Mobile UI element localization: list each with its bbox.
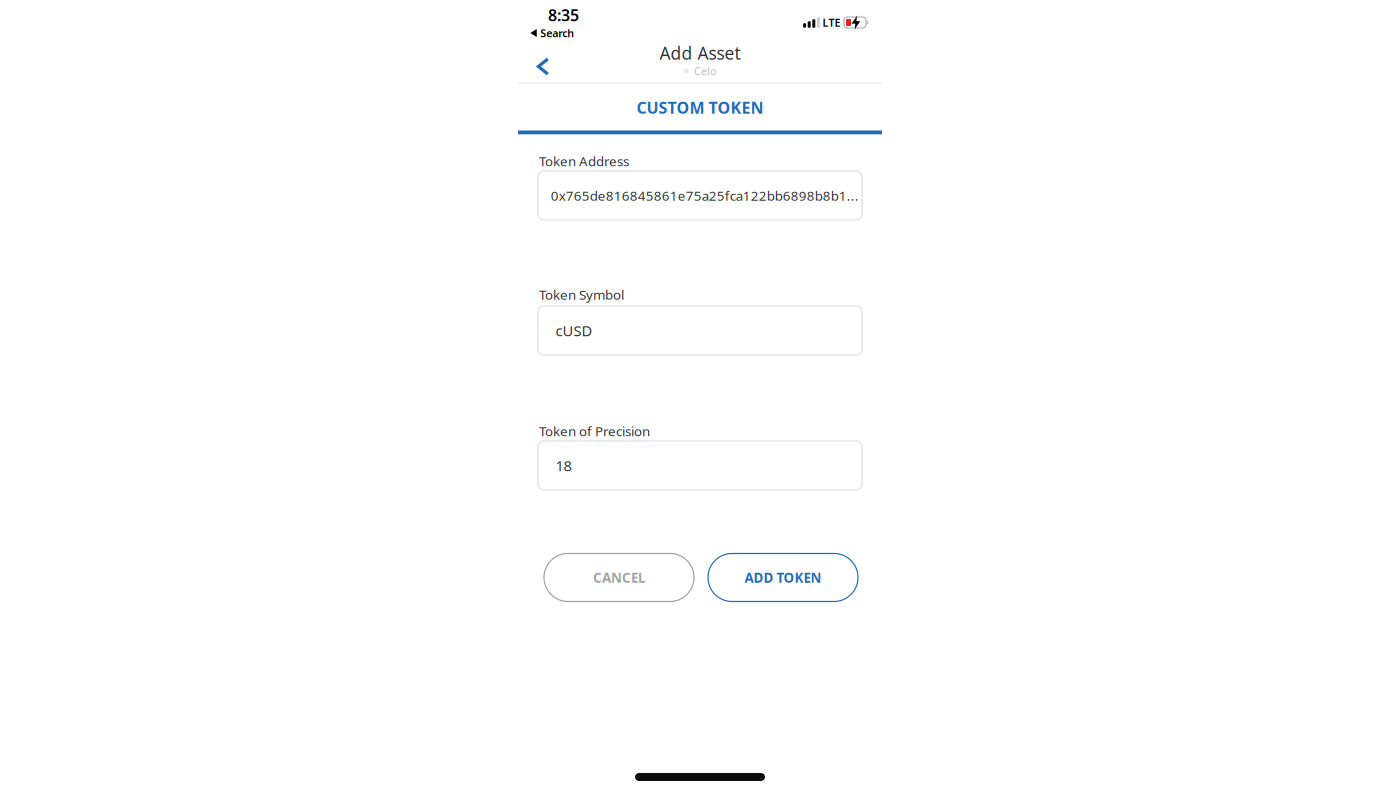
button[interactable]: CUSTOM TOKEN	[518, 85, 882, 129]
button[interactable]: CANCEL	[544, 553, 694, 601]
staticText: Token Symbol	[539, 286, 624, 303]
staticText: 18	[555, 456, 571, 475]
staticText: Token of Precision	[539, 422, 650, 440]
button[interactable]: Search	[530, 26, 574, 40]
staticText: cUSD	[555, 321, 592, 340]
staticText: 8:35	[548, 4, 579, 26]
staticText: Token Address	[539, 152, 629, 170]
button[interactable]: ADD TOKEN	[708, 553, 858, 601]
staticText: LTE	[822, 15, 840, 30]
staticText: Celo	[694, 64, 716, 78]
button[interactable]: Back	[523, 46, 563, 86]
staticText: Add Asset	[659, 41, 740, 64]
staticText: Search	[540, 26, 574, 40]
staticText: 0x765de816845861e75a25fca122bb6898b8b1..…	[551, 187, 859, 204]
staticText: ADD TOKEN	[744, 569, 821, 586]
staticText: CUSTOM TOKEN	[636, 97, 763, 118]
staticText: CANCEL	[593, 569, 645, 586]
